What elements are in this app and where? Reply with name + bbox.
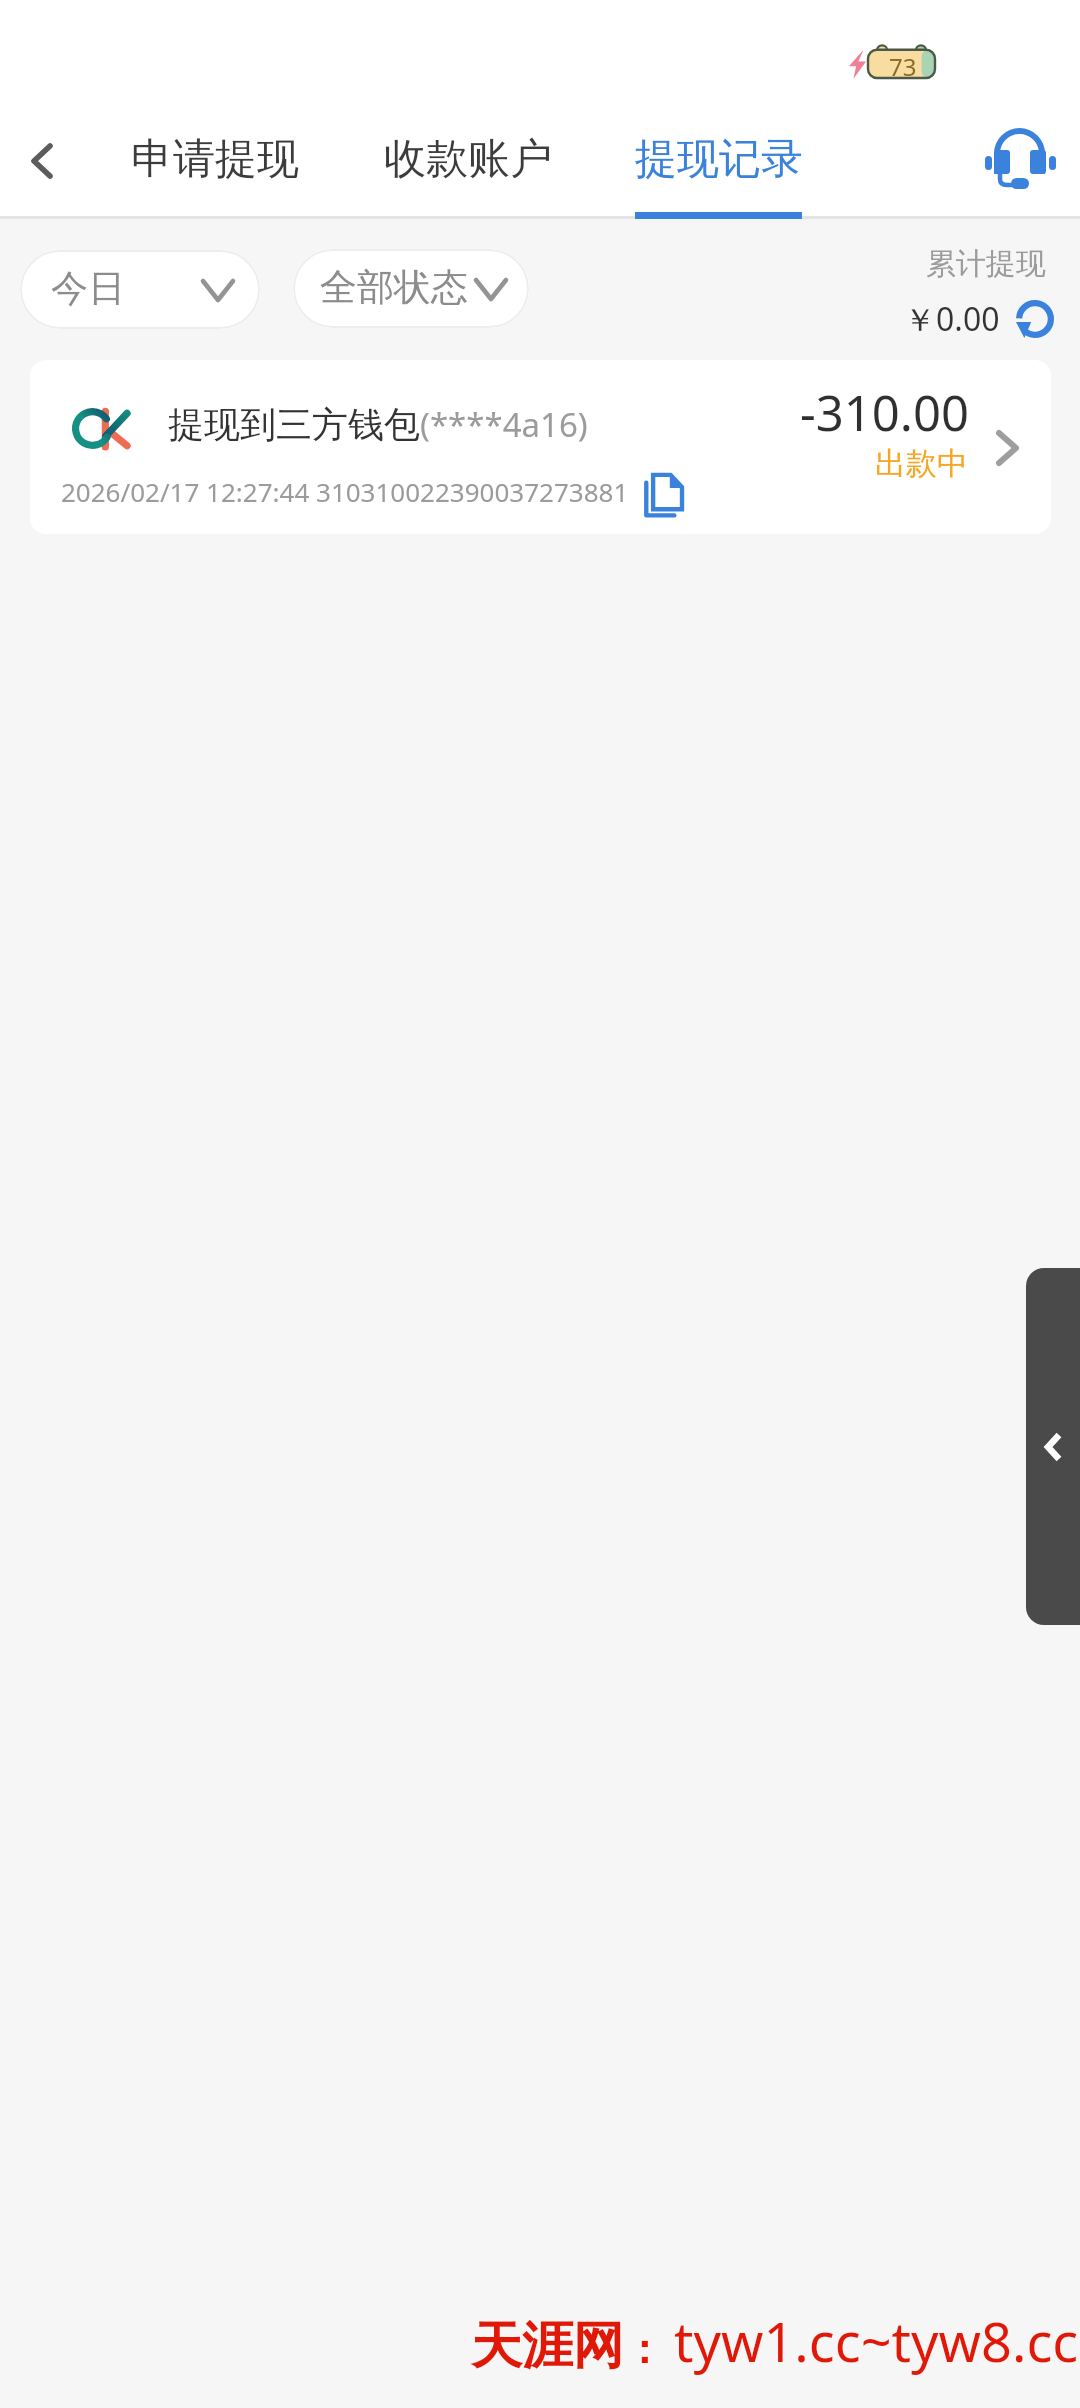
- button[interactable]: 提现到三方钱包(****4a16): [30, 360, 1051, 534]
- button[interactable]: Expand panel: [1026, 1268, 1080, 1625]
- button[interactable]: 收款账户: [355, 108, 580, 218]
- staticText: 2026/02/17 12:27:44 31031002239003727388…: [61, 474, 629, 509]
- button[interactable]: 全部状态: [293, 249, 529, 328]
- button[interactable]: 提现记录: [607, 108, 830, 218]
- staticText: 天涯网: [471, 2314, 624, 2378]
- button[interactable]: Refresh: [1014, 298, 1056, 340]
- button[interactable]: 今日: [20, 250, 260, 329]
- staticText: 73: [889, 50, 917, 82]
- staticText: -310.00: [800, 379, 970, 446]
- staticText: 申请提现: [131, 133, 299, 186]
- staticText: tyw1.cc~tyw8.cc: [674, 2304, 1079, 2378]
- staticText: 收款账户: [384, 133, 552, 186]
- staticText: 出款中: [875, 444, 968, 483]
- button[interactable]: Back: [0, 108, 90, 214]
- staticText: ：: [624, 2324, 664, 2374]
- staticText: 全部状态: [320, 264, 468, 311]
- staticText: 今日: [51, 265, 125, 312]
- staticText: 累计提现: [926, 245, 1046, 283]
- staticText: ￥0.00: [904, 297, 1000, 341]
- button[interactable]: Copy: [642, 472, 684, 520]
- button[interactable]: 申请提现: [104, 108, 326, 218]
- button[interactable]: Customer service: [970, 108, 1070, 208]
- staticText: 提现记录: [635, 133, 803, 186]
- staticText: 提现到三方钱包(****4a16): [168, 402, 588, 448]
